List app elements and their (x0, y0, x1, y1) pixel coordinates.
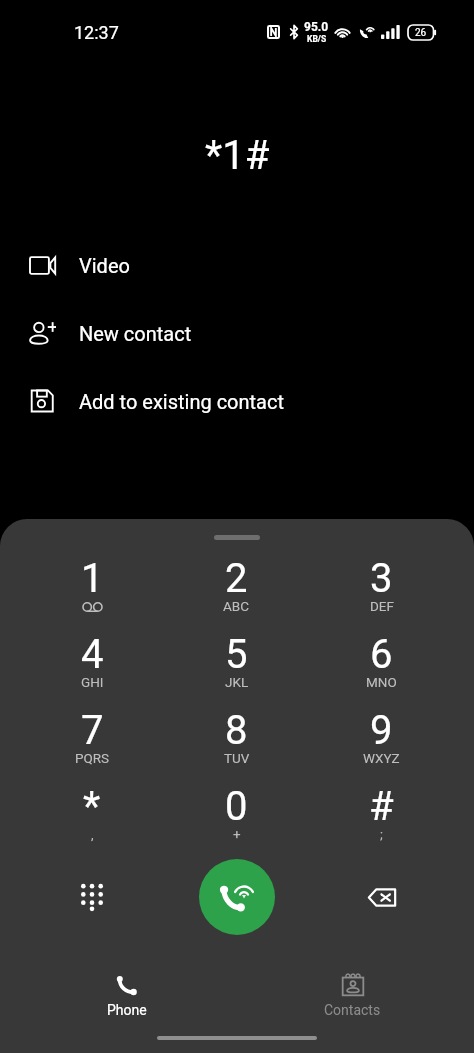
staticText: GHI (81, 674, 104, 690)
button[interactable]: 3 (309, 563, 454, 639)
staticText: WXYZ (363, 750, 400, 766)
staticText: Contacts (324, 1002, 381, 1018)
staticText: 8 (225, 707, 248, 754)
button[interactable]: 1 (20, 563, 164, 639)
staticText: 1 (81, 555, 104, 602)
button[interactable]: 7 (20, 715, 164, 791)
button[interactable]: 5 (164, 639, 309, 715)
button[interactable]: Contacts (242, 966, 463, 1053)
staticText: ABC (223, 598, 250, 614)
staticText: # (369, 783, 394, 830)
staticText: DEF (370, 598, 394, 614)
staticText: 95.0 (304, 20, 329, 34)
staticText: MNO (366, 674, 397, 690)
staticText: 0 (225, 783, 248, 830)
staticText: Add to existing contact (79, 390, 284, 413)
button[interactable]: 0 (164, 791, 309, 867)
staticText: KB/S (307, 34, 327, 44)
staticText: * (83, 783, 101, 830)
button[interactable]: 4 (20, 639, 164, 715)
button[interactable]: # (309, 791, 454, 867)
staticText: PQRS (75, 750, 110, 766)
staticText: + (233, 826, 241, 842)
staticText: 6 (370, 631, 393, 678)
staticText: 7 (81, 707, 104, 754)
button[interactable]: * (20, 791, 164, 867)
button[interactable]: 6 (309, 639, 454, 715)
button[interactable]: Backspace (309, 851, 454, 943)
button[interactable]: 9 (309, 715, 454, 791)
button[interactable]: Video (0, 231, 474, 299)
button[interactable]: Hide dialpad (20, 851, 164, 943)
staticText: 2 (225, 555, 248, 602)
staticText: Phone (107, 1002, 147, 1018)
button[interactable]: New contact (0, 299, 474, 367)
button[interactable]: Call (199, 859, 275, 935)
button[interactable]: Phone (0, 966, 253, 1053)
staticText: ; (380, 826, 383, 842)
staticText: 12:37 (74, 22, 119, 43)
staticText: 5 (225, 631, 248, 678)
staticText: 9 (370, 707, 393, 754)
button[interactable]: 2 (164, 563, 309, 639)
staticText: , (91, 826, 94, 842)
staticText: 3 (370, 555, 393, 602)
button[interactable]: 8 (164, 715, 309, 791)
staticText: Video (79, 254, 130, 277)
button[interactable]: Add to existing contact (0, 367, 474, 435)
staticText: New contact (79, 322, 192, 345)
staticText: JKL (225, 674, 249, 690)
staticText: 26 (415, 27, 427, 39)
staticText: TUV (224, 750, 250, 766)
staticText: 4 (81, 631, 104, 678)
staticText: *1# (205, 132, 270, 179)
